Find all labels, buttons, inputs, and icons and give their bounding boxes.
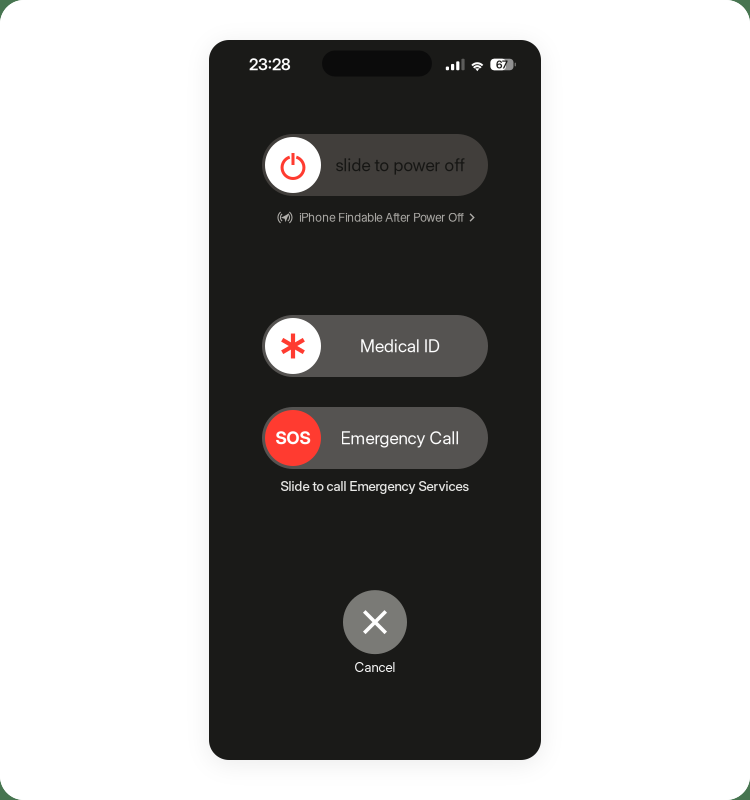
staticText: Slide to call Emergency Services	[280, 478, 469, 494]
staticText: slide to power off	[335, 154, 464, 175]
staticText: Cancel	[354, 659, 395, 675]
staticText: iPhone Findable After Power Off	[299, 210, 464, 225]
button[interactable]: iPhone Findable After Power Off	[276, 209, 474, 226]
button[interactable]: Cancel	[343, 590, 407, 675]
staticText: SOS	[275, 427, 310, 448]
button[interactable]: Medical ID	[262, 315, 488, 377]
staticText: 67	[496, 58, 508, 71]
staticText: Emergency Call	[340, 427, 459, 448]
button[interactable]: slide to power off	[262, 134, 488, 196]
staticText: Medical ID	[360, 335, 440, 356]
button[interactable]: Emergency Call	[262, 407, 488, 469]
staticText: 23:28	[249, 55, 291, 74]
